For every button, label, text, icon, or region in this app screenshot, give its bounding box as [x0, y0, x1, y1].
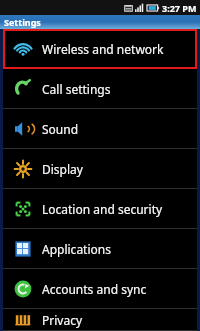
- other: Display: [13, 159, 33, 179]
- button[interactable]: Sound: [3, 109, 197, 149]
- button[interactable]: Wireless and network: [3, 29, 197, 69]
- button[interactable]: Accounts and sync: [3, 269, 197, 309]
- staticText: Settings: [4, 16, 41, 28]
- other: Call settings: [13, 79, 33, 99]
- other: Applications: [13, 239, 33, 259]
- staticText: Call settings: [42, 81, 111, 97]
- staticText: Display: [42, 161, 83, 177]
- button[interactable]: Call settings: [3, 69, 197, 109]
- staticText: Location and security: [42, 201, 163, 217]
- button[interactable]: Privacy: [3, 309, 197, 331]
- staticText: Wireless and network: [42, 41, 164, 57]
- other: Accounts and sync: [13, 279, 33, 299]
- staticText: Accounts and sync: [42, 281, 147, 297]
- other: Sound: [13, 119, 33, 139]
- button[interactable]: Display: [3, 149, 197, 189]
- staticText: Privacy: [42, 312, 83, 328]
- button[interactable]: Applications: [3, 229, 197, 269]
- staticText: Applications: [42, 241, 111, 257]
- other: Location and security: [13, 199, 33, 219]
- staticText: 3:27 PM: [162, 2, 197, 14]
- other: Privacy: [13, 310, 33, 330]
- other: Wireless and network: [13, 39, 33, 59]
- button[interactable]: Location and security: [3, 189, 197, 229]
- staticText: Sound: [42, 121, 79, 137]
